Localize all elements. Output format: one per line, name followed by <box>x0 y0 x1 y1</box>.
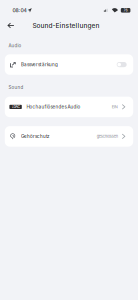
staticText: Hochauflösendes Audio <box>26 104 80 110</box>
button[interactable]: LDAC <box>5 97 133 117</box>
button[interactable]: Zurück <box>3 18 17 32</box>
button[interactable]: Gehörschutz <box>5 126 133 147</box>
staticText: Sound-Einstellungen <box>32 21 99 29</box>
staticText: EIN <box>112 104 118 109</box>
staticText: Gehörschutz <box>21 134 50 139</box>
staticText: geschlossen <box>97 134 118 139</box>
staticText: LDAC <box>12 105 20 109</box>
staticText: Sound <box>9 85 24 90</box>
button[interactable]: Bassverstärkung <box>5 54 133 75</box>
staticText: 76 <box>124 8 128 12</box>
staticText: Audio <box>9 43 22 48</box>
staticText: Bassverstärkung <box>21 62 58 67</box>
staticText: 08:04 <box>12 7 26 13</box>
